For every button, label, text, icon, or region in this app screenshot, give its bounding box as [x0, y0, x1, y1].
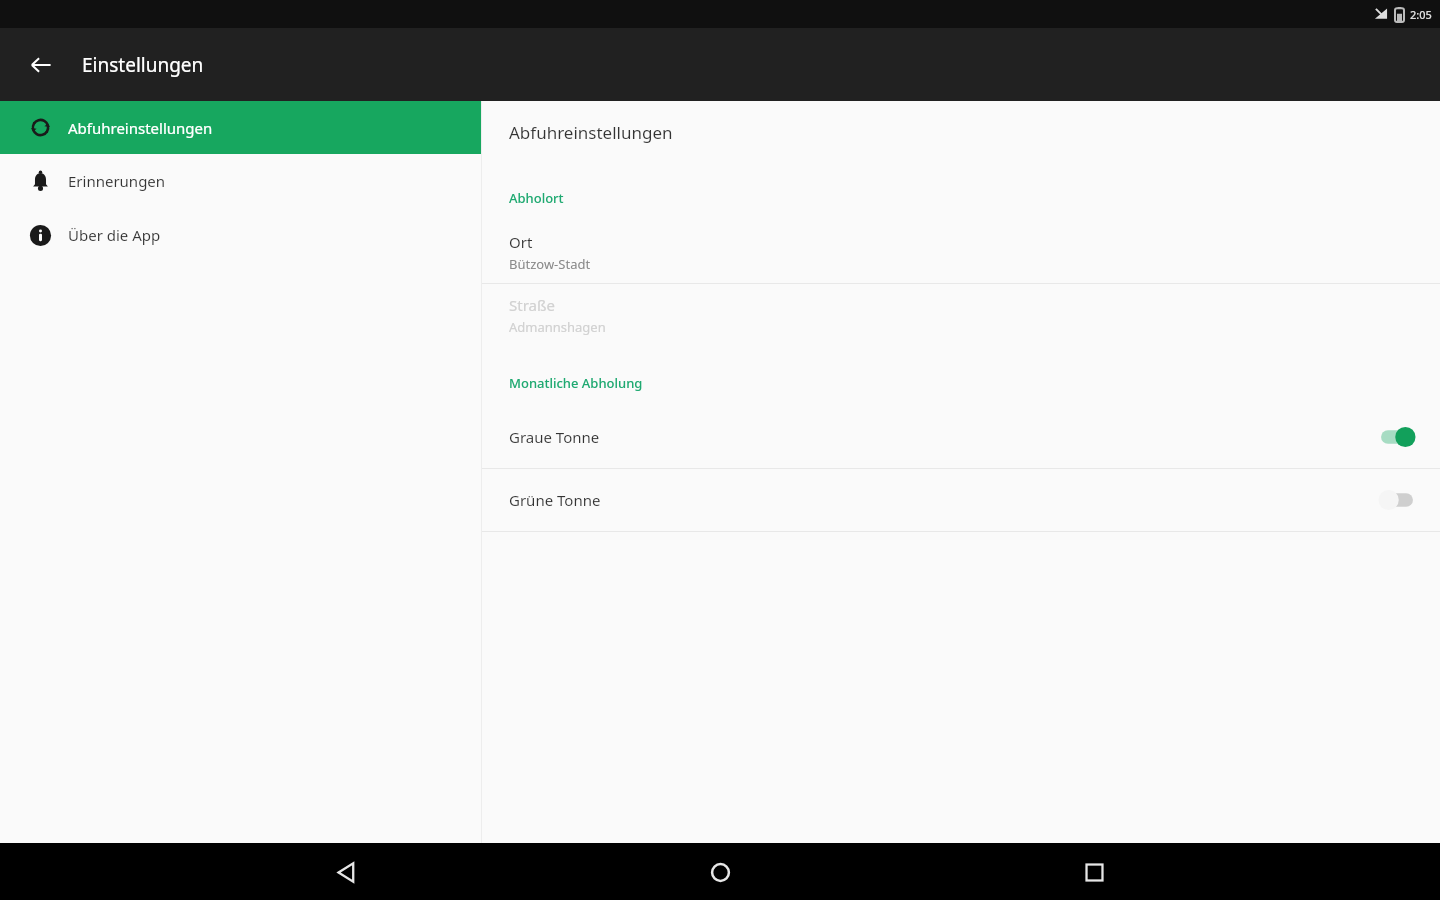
- button[interactable]: Zurück: [17, 41, 65, 89]
- staticText: Straße: [509, 295, 555, 315]
- button[interactable]: Über die App: [0, 208, 481, 262]
- staticText: Ort: [509, 232, 533, 252]
- staticText: Bützow-Stadt: [509, 255, 591, 273]
- staticText: Grüne Tonne: [509, 490, 601, 510]
- button[interactable]: Graue Tonne: [482, 406, 1440, 468]
- staticText: Abfuhreinstellungen: [68, 118, 213, 138]
- staticText: Admannshagen: [509, 318, 606, 336]
- staticText: Abholort: [509, 189, 564, 207]
- staticText: 2:05: [1410, 7, 1432, 22]
- button[interactable]: Aus: [1378, 489, 1416, 511]
- button[interactable]: Ort: [482, 221, 1440, 283]
- button[interactable]: Straße: [482, 284, 1440, 346]
- button[interactable]: Erinnerungen: [0, 154, 481, 208]
- staticText: Graue Tonne: [509, 427, 600, 447]
- staticText: Einstellungen: [82, 52, 204, 78]
- button[interactable]: An: [1378, 426, 1416, 448]
- staticText: Monatliche Abholung: [509, 374, 643, 392]
- button[interactable]: Übersicht: [1066, 844, 1122, 900]
- staticText: Über die App: [68, 225, 161, 245]
- button[interactable]: Grüne Tonne: [482, 469, 1440, 531]
- staticText: Erinnerungen: [68, 171, 166, 191]
- button[interactable]: Zurück: [318, 844, 374, 900]
- button[interactable]: Startbildschirm: [692, 844, 748, 900]
- staticText: Abfuhreinstellungen: [509, 121, 673, 144]
- button[interactable]: Abfuhreinstellungen: [0, 101, 481, 154]
